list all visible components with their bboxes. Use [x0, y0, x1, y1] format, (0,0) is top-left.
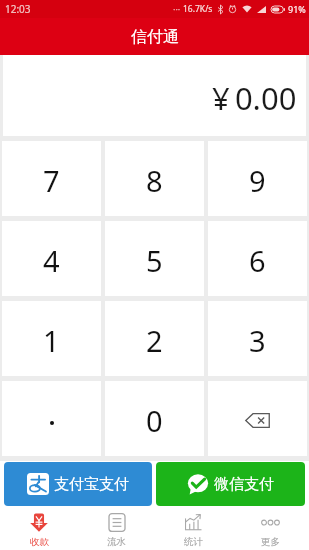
staticText: ¥ 0.00 [212, 77, 297, 119]
button[interactable]: 微信支付 [156, 462, 305, 506]
staticText: 5 [146, 241, 163, 280]
button[interactable]: 流水 [78, 509, 155, 550]
staticText: 1 [43, 321, 60, 360]
staticText: 2 [146, 321, 163, 360]
staticText: 信付通 [131, 27, 179, 47]
staticText: 6 [249, 241, 266, 280]
button[interactable]: 3 [208, 301, 307, 376]
staticText: 支付宝支付 [54, 475, 129, 494]
staticText: 12:03 [5, 2, 31, 16]
button[interactable]: 8 [105, 141, 204, 216]
button[interactable]: 5 [105, 221, 204, 296]
button[interactable]: 2 [105, 301, 204, 376]
button[interactable] [2, 381, 101, 456]
button[interactable]: 6 [208, 221, 307, 296]
staticText: 0 [146, 401, 163, 440]
staticText: 8 [146, 161, 163, 200]
staticText: 16.7K/s [183, 3, 213, 15]
staticText: 微信支付 [214, 475, 274, 494]
other: 收款 [30, 513, 48, 532]
staticText: 更多 [261, 536, 280, 548]
button[interactable]: 更多 [232, 509, 309, 550]
button[interactable]: 9 [208, 141, 307, 216]
button[interactable]: Backspace [208, 381, 307, 456]
button[interactable]: 0 [105, 381, 204, 456]
other: Backspace [245, 412, 270, 429]
staticText: 91% [288, 3, 306, 15]
staticText: 9 [249, 161, 266, 200]
staticText: ··· [173, 3, 181, 15]
staticText: 7 [43, 161, 60, 200]
staticText: 4 [43, 241, 60, 280]
button[interactable]: 收款 [0, 509, 78, 550]
other: 更多 [261, 513, 280, 531]
staticText: 流水 [107, 536, 126, 548]
staticText: 收款 [30, 536, 49, 548]
staticText: 统计 [184, 536, 203, 548]
button[interactable]: 支付宝支付 [4, 462, 152, 506]
button[interactable]: 4 [2, 221, 101, 296]
button[interactable]: 7 [2, 141, 101, 216]
button[interactable]: 统计 [155, 509, 232, 550]
staticText: 3 [249, 321, 266, 360]
button[interactable]: 1 [2, 301, 101, 376]
